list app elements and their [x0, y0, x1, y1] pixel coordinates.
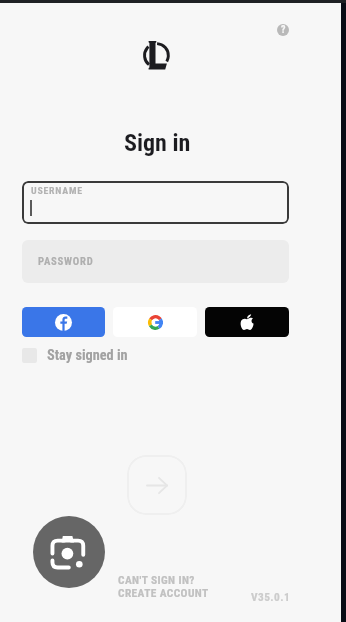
button[interactable]: CREATE ACCOUNT	[118, 586, 209, 599]
button[interactable]: Stay signed in	[22, 346, 128, 364]
button[interactable]: Continue with Facebook	[22, 307, 105, 337]
staticText: ?	[281, 24, 286, 36]
button[interactable]: CAN'T SIGN IN?	[118, 573, 195, 586]
button[interactable]: Continue with Apple	[205, 307, 289, 337]
staticText: Stay signed in	[47, 347, 128, 364]
staticText: PASSWORD	[38, 255, 94, 268]
button[interactable]: Sign in	[127, 455, 187, 515]
button[interactable]: Help	[271, 18, 295, 42]
button[interactable]: Continue with Google	[113, 307, 197, 337]
staticText: V35.0.1	[251, 590, 291, 603]
button[interactable]: Search with Lens	[33, 516, 105, 588]
button[interactable]: PASSWORD	[22, 240, 289, 283]
button[interactable]: USERNAME	[22, 181, 289, 224]
staticText: USERNAME	[31, 185, 83, 197]
staticText: Sign in	[124, 129, 191, 157]
